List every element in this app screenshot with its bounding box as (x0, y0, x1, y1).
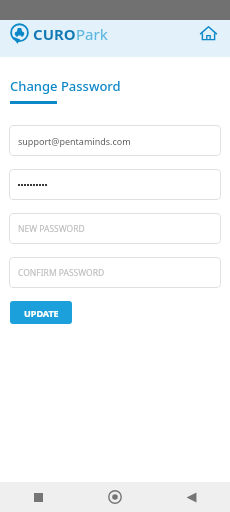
staticText: support@pentaminds.com (18, 135, 131, 147)
staticText: NEW PASSWORD (18, 223, 85, 235)
staticText: Park (76, 24, 108, 44)
button[interactable]: Back (153, 482, 230, 512)
button[interactable] (9, 169, 221, 200)
button[interactable]: CONFIRM PASSWORD (9, 257, 221, 288)
button[interactable]: support@pentaminds.com (9, 125, 221, 156)
staticText: CONFIRM PASSWORD (18, 267, 105, 279)
button[interactable]: Recent apps (0, 482, 76, 512)
staticText: UPDATE (24, 307, 59, 319)
button[interactable]: Home (195, 20, 221, 46)
button[interactable]: UPDATE (10, 301, 72, 324)
button[interactable]: Home (76, 482, 153, 512)
button[interactable]: CURO (9, 23, 108, 44)
staticText: Change Password (10, 77, 121, 95)
button[interactable]: NEW PASSWORD (9, 213, 221, 244)
staticText: CURO (33, 24, 76, 44)
